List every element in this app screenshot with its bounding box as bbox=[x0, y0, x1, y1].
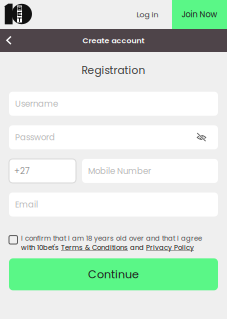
staticText: +27 bbox=[14, 165, 30, 177]
button[interactable]: +27 bbox=[9, 159, 76, 183]
staticText: Registration bbox=[81, 63, 145, 78]
staticText: I confirm that I am 18 years old over an… bbox=[21, 233, 202, 243]
button[interactable]: Continue bbox=[9, 258, 218, 290]
staticText: Continue bbox=[88, 267, 139, 282]
button[interactable]: Confirm age and terms bbox=[9, 230, 21, 244]
staticText: Email bbox=[15, 199, 38, 210]
staticText: Join Now bbox=[181, 9, 217, 20]
staticText: Mobile Number bbox=[88, 165, 151, 177]
staticText: with 10bet's Terms & Conditions and Priv… bbox=[21, 243, 194, 252]
staticText: Log in bbox=[136, 9, 158, 20]
button[interactable]: Log in bbox=[123, 0, 172, 29]
staticText: Password bbox=[15, 131, 55, 143]
button[interactable]: Join Now bbox=[172, 0, 227, 29]
button[interactable]: Back bbox=[0, 29, 17, 52]
staticText: Create account bbox=[82, 35, 144, 46]
staticText: Username bbox=[15, 98, 58, 110]
button[interactable]: Show password bbox=[197, 133, 207, 142]
